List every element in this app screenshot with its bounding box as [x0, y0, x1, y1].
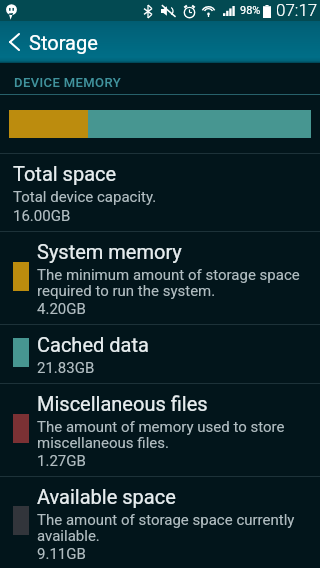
- staticText: 21.83GB: [37, 359, 95, 377]
- staticText: Storage: [29, 31, 98, 54]
- button[interactable]: Navigate up: [0, 21, 29, 63]
- button[interactable]: Miscellaneous files: [0, 384, 320, 476]
- staticText: Total space: [13, 162, 117, 185]
- staticText: System memory: [37, 240, 182, 263]
- staticText: 16.00GB: [13, 207, 71, 225]
- button[interactable]: Cached data: [0, 325, 320, 383]
- staticText: The amount of storage space currently av…: [37, 511, 310, 544]
- button[interactable]: Available space: [0, 477, 320, 568]
- staticText: The amount of memory used to store misce…: [37, 418, 310, 451]
- button[interactable]: Total space: [0, 154, 320, 231]
- button[interactable]: System memory: [0, 232, 320, 324]
- staticText: Cached data: [37, 333, 149, 356]
- staticText: 98%: [240, 4, 261, 17]
- staticText: 9.11GB: [37, 545, 86, 562]
- staticText: DEVICE MEMORY: [14, 75, 122, 90]
- staticText: 4.20GB: [37, 300, 86, 318]
- staticText: Miscellaneous files: [37, 392, 208, 415]
- staticText: The minimum amount of storage space requ…: [37, 266, 310, 299]
- staticText: 1.27GB: [37, 452, 86, 470]
- staticText: 07:17: [276, 0, 318, 20]
- staticText: Available space: [37, 485, 176, 508]
- staticText: Total device capacity.: [13, 188, 157, 206]
